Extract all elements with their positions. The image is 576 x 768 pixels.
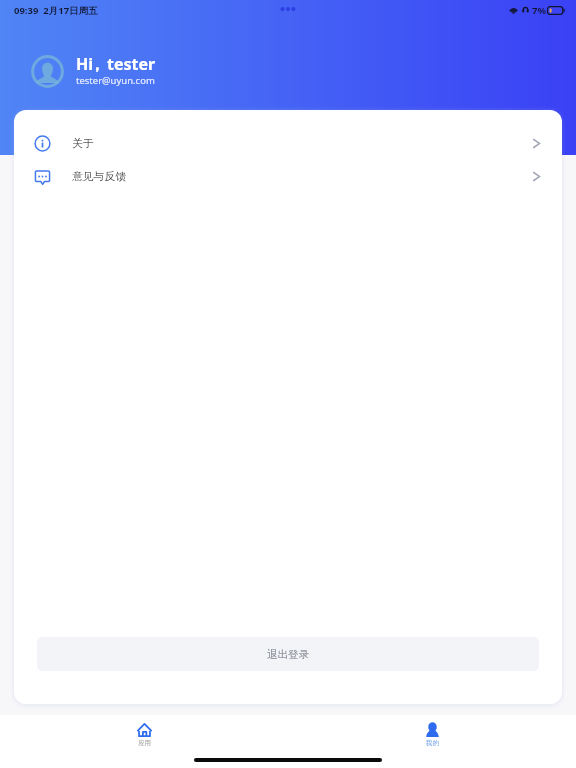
button[interactable]: 关于: [14, 127, 562, 160]
button[interactable]: 应用: [113, 715, 176, 751]
staticText: 09:39 2月17日周五: [14, 4, 98, 17]
staticText: tester: [107, 53, 156, 75]
staticText: tester@uyun.com: [76, 74, 155, 87]
staticText: 应用: [138, 739, 151, 747]
button[interactable]: 退出登录: [37, 637, 539, 671]
staticText: 关于: [72, 137, 94, 151]
button[interactable]: 我的: [402, 715, 463, 751]
button[interactable]: 意见与反馈: [14, 160, 562, 193]
staticText: ，: [89, 55, 105, 75]
staticText: 退出登录: [267, 648, 309, 661]
staticText: Hi: [76, 53, 94, 75]
staticText: 意见与反馈: [72, 170, 126, 184]
staticText: 7%: [532, 4, 547, 17]
staticText: 我的: [426, 739, 439, 747]
